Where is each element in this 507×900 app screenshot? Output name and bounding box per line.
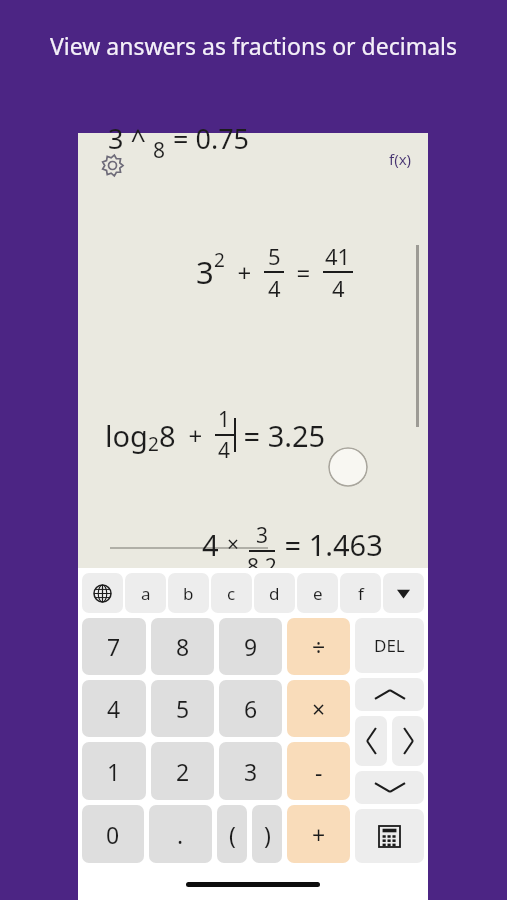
button[interactable]: ( [217,805,247,863]
staticText: + [312,819,326,850]
button[interactable]: Calculator [355,809,424,863]
button[interactable]: Move up [355,678,424,711]
staticText: e [313,582,323,605]
staticText: 0 [106,819,120,850]
button[interactable]: a [125,573,166,613]
staticText: × [312,693,326,724]
staticText: 9 [244,631,258,662]
staticText: 8.2 [247,552,277,568]
staticText: b [183,582,194,605]
button[interactable]: DEL [355,618,424,673]
staticText: 4 [107,693,121,724]
staticText: 6 [244,693,258,724]
staticText: ( [229,819,236,850]
button[interactable]: 7 [82,618,146,675]
staticText: log [105,416,148,455]
staticText: View answers as fractions or decimals [50,30,457,61]
button[interactable]: Move left [355,716,387,766]
staticText: 1 [107,756,121,787]
staticText: ÷ [312,631,326,662]
staticText: 4 [268,273,281,303]
staticText: 4 [202,525,227,564]
staticText: - [315,756,323,787]
staticText: + [225,256,264,289]
staticText: f(x) [389,149,412,169]
staticText: 8 [159,416,176,455]
button[interactable]: . [149,805,212,863]
button[interactable]: × [287,680,350,737]
staticText: 8 [153,136,166,165]
button[interactable]: 0 [82,805,144,863]
staticText: 5 [176,693,190,724]
staticText: 4 [332,273,345,303]
staticText: . [177,819,184,850]
staticText: 2 [214,247,225,273]
staticText: 3 [244,756,258,787]
staticText: 2 [176,756,190,787]
button[interactable]: c [211,573,252,613]
button[interactable]: Settings [96,149,128,181]
staticText: 5 [268,241,281,271]
staticText: = 1.463 [277,525,383,564]
button[interactable]: Language [82,573,123,613]
staticText: = 3.25 [236,416,326,455]
button[interactable]: Move down [355,771,424,804]
staticText: 41 [325,241,351,271]
staticText: 7 [107,631,121,662]
staticText: × [227,530,240,559]
button[interactable]: 2 [151,742,214,800]
staticText: 8 [176,631,190,662]
button[interactable]: ÷ [287,618,350,675]
staticText: DEL [374,634,405,657]
staticText: = [284,256,323,289]
staticText: = 0.75 [166,120,250,157]
staticText: c [227,582,236,605]
button[interactable]: Drag handle [328,447,368,487]
button[interactable]: 9 [219,618,282,675]
staticText: a [141,582,151,605]
button[interactable]: More options [383,573,424,613]
button[interactable]: + [287,805,350,863]
button[interactable]: 8 [151,618,214,675]
staticText: 4 [218,436,231,465]
button[interactable]: ) [252,805,282,863]
button[interactable]: 5 [151,680,214,737]
button[interactable]: 6 [219,680,282,737]
button[interactable]: 4 [82,680,146,737]
button[interactable]: Move right [392,716,424,766]
button[interactable]: b [168,573,209,613]
button[interactable]: d [254,573,295,613]
button[interactable]: f [340,573,381,613]
button[interactable]: 3 [219,742,282,800]
button[interactable]: 1 [82,742,146,800]
staticText: + [176,419,215,452]
staticText: 1 [218,405,231,434]
button[interactable]: e [297,573,338,613]
staticText: 3 [256,521,269,550]
staticText: f [358,582,364,605]
staticText: ) [264,819,271,850]
staticText: 3 ^ [108,120,153,157]
button[interactable]: f(x) [383,145,418,173]
staticText: 2 [148,431,159,457]
button[interactable]: - [287,742,350,800]
staticText: d [269,582,280,605]
staticText: 3 [196,251,214,293]
